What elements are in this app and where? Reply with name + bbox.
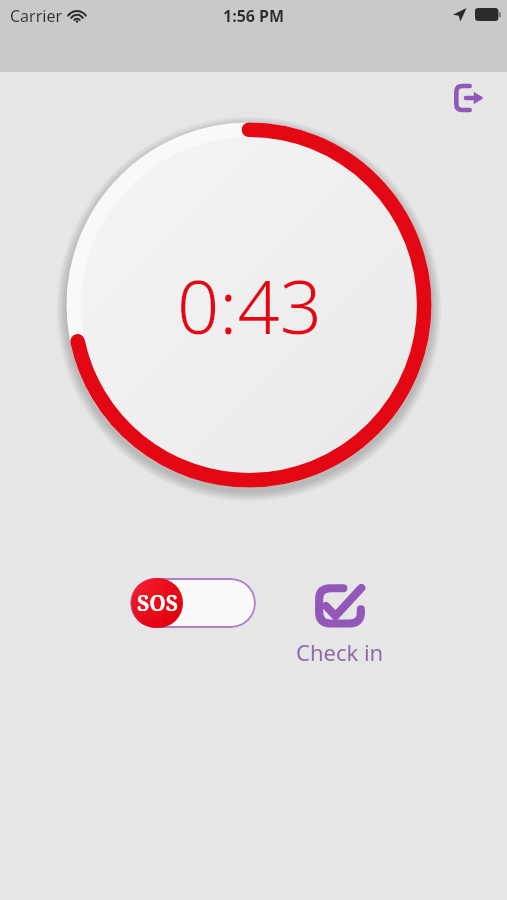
staticText: SOS xyxy=(137,589,178,618)
button[interactable]: Log out xyxy=(447,76,491,120)
button[interactable]: Check in xyxy=(290,578,390,667)
button[interactable]: SOS emergency toggle xyxy=(130,578,256,628)
staticText: Carrier xyxy=(10,5,63,27)
staticText: 0:43 xyxy=(177,255,322,356)
staticText: 1:56 PM xyxy=(223,5,285,27)
staticText: Check in xyxy=(296,637,384,667)
